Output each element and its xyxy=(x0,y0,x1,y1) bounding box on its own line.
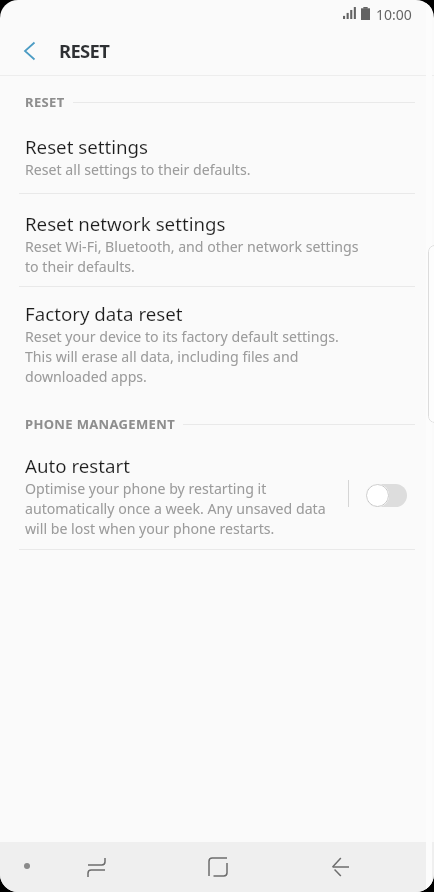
button[interactable]: Hide navigation bar xyxy=(3,842,51,890)
staticText: Auto restart xyxy=(25,453,130,478)
staticText: downloaded apps. xyxy=(25,367,147,386)
button[interactable]: Recent apps xyxy=(68,842,124,892)
staticText: RESET xyxy=(25,93,65,111)
staticText: to their defaults. xyxy=(25,257,135,276)
button[interactable]: Reset network settings xyxy=(0,210,434,282)
staticText: 10:00 xyxy=(376,5,412,24)
staticText: will be lost when your phone restarts. xyxy=(25,519,275,538)
button[interactable]: Auto restart switch, off xyxy=(357,471,415,519)
staticText: Optimise your phone by restarting it xyxy=(25,479,267,498)
staticText: Reset settings xyxy=(25,134,149,159)
staticText: automatically once a week. Any unsaved d… xyxy=(25,499,326,518)
button[interactable]: Auto restart xyxy=(0,452,434,544)
button[interactable]: Back xyxy=(312,842,368,892)
staticText: PHONE MANAGEMENT xyxy=(25,415,175,433)
staticText: Reset all settings to their defaults. xyxy=(25,160,251,179)
staticText: Reset your device to its factory default… xyxy=(25,327,339,346)
button[interactable]: Factory data reset xyxy=(0,300,434,392)
staticText: Reset network settings xyxy=(25,211,226,236)
staticText: This will erase all data, including file… xyxy=(25,347,299,366)
button[interactable]: Reset settings xyxy=(0,133,434,185)
staticText: Reset Wi-Fi, Bluetooth, and other networ… xyxy=(25,237,359,256)
staticText: Factory data reset xyxy=(25,301,183,326)
button[interactable]: Home xyxy=(190,842,246,892)
button[interactable]: Navigate up xyxy=(0,26,58,75)
staticText: RESET xyxy=(59,38,110,63)
